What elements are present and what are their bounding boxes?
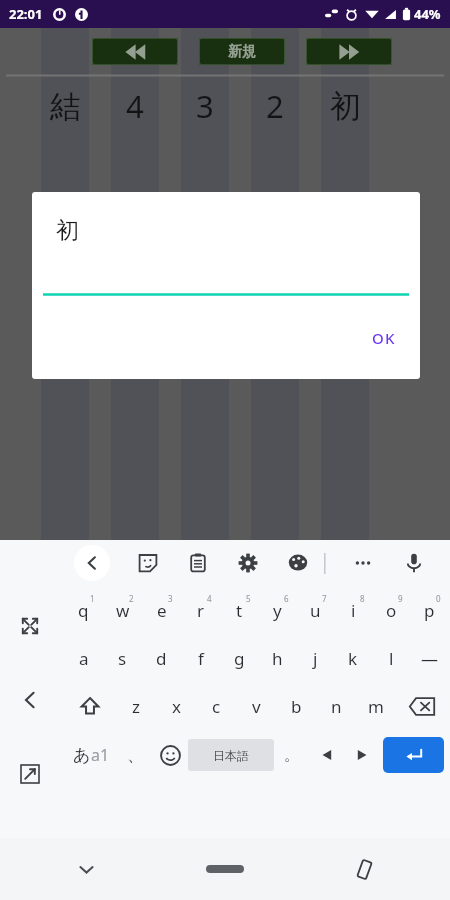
button[interactable]: Back — [12, 682, 48, 718]
button[interactable]: Expand keyboard — [12, 608, 48, 644]
button[interactable]: Enter — [383, 737, 444, 773]
button[interactable]: Themes — [280, 545, 316, 581]
button[interactable]: Emoji — [153, 730, 188, 780]
staticText: a — [79, 647, 89, 670]
staticText: 1 — [90, 593, 95, 604]
staticText: c — [212, 695, 221, 718]
button[interactable]: 初 — [321, 77, 369, 135]
button[interactable]: l — [372, 634, 410, 682]
button[interactable]: d — [142, 634, 181, 682]
staticText: k — [348, 647, 358, 670]
button[interactable]: More options — [345, 545, 381, 581]
staticText: t — [236, 599, 243, 622]
button[interactable]: 2 — [251, 77, 299, 135]
staticText: 5 — [246, 593, 251, 604]
staticText: x — [172, 695, 181, 718]
staticText: 9 — [398, 593, 403, 604]
staticText: d — [156, 647, 167, 670]
staticText: OK — [372, 328, 396, 348]
button[interactable]: s — [103, 634, 142, 682]
staticText: g — [234, 647, 245, 670]
button[interactable]: j — [296, 634, 334, 682]
staticText: 初 — [56, 216, 79, 245]
staticText: p — [424, 599, 435, 622]
staticText: 8 — [360, 593, 365, 604]
button[interactable]: Backspace — [396, 682, 448, 730]
button[interactable]: w — [103, 586, 142, 634]
button[interactable]: f — [181, 634, 220, 682]
button[interactable]: h — [258, 634, 296, 682]
button[interactable]: 結 — [41, 77, 89, 135]
staticText: 3 — [168, 593, 173, 604]
button[interactable]: q — [64, 586, 103, 634]
button[interactable]: 、 — [118, 730, 153, 780]
button[interactable]: g — [220, 634, 258, 682]
button[interactable]: Home — [185, 853, 265, 885]
button[interactable]: c — [196, 682, 236, 730]
button[interactable]: e — [142, 586, 181, 634]
button[interactable]: y — [258, 586, 296, 634]
staticText: 3 — [196, 85, 214, 127]
staticText: 2 — [129, 593, 134, 604]
staticText: 初 — [330, 87, 361, 126]
button[interactable]: 新規 — [199, 38, 285, 65]
button[interactable]: Stickers — [130, 545, 166, 581]
button[interactable]: あ — [64, 730, 118, 780]
staticText: r — [197, 599, 205, 622]
staticText: v — [252, 695, 261, 718]
button[interactable]: n — [316, 682, 356, 730]
button[interactable]: 。 — [274, 730, 309, 780]
button[interactable]: Voice input — [396, 545, 432, 581]
staticText: 44% — [414, 5, 441, 23]
button[interactable]: Shift — [64, 682, 116, 730]
staticText: l — [389, 647, 394, 670]
button[interactable]: i — [334, 586, 372, 634]
button[interactable]: r — [181, 586, 220, 634]
button[interactable]: k — [334, 634, 372, 682]
staticText: y — [273, 599, 282, 622]
staticText: n — [331, 695, 342, 718]
button[interactable]: Fast forward — [306, 38, 392, 65]
staticText: 4 — [126, 85, 144, 127]
button[interactable]: x — [156, 682, 196, 730]
button[interactable]: b — [276, 682, 316, 730]
staticText: h — [272, 647, 283, 670]
button[interactable]: Clipboard — [180, 545, 216, 581]
button[interactable]: 3 — [181, 77, 229, 135]
staticText: 。 — [284, 746, 299, 765]
button[interactable]: a — [64, 634, 103, 682]
button[interactable]: Cursor left — [309, 730, 344, 780]
button[interactable]: z — [116, 682, 156, 730]
button[interactable]: — — [410, 634, 448, 682]
button[interactable]: m — [356, 682, 396, 730]
button[interactable]: v — [236, 682, 276, 730]
staticText: z — [132, 695, 140, 718]
staticText: o — [386, 599, 397, 622]
button[interactable]: Floating keyboard — [12, 756, 48, 792]
staticText: — — [421, 647, 438, 670]
button[interactable]: 日本語 — [188, 739, 274, 771]
button[interactable]: u — [296, 586, 334, 634]
staticText: a1 — [91, 744, 110, 766]
button[interactable]: Settings — [230, 545, 266, 581]
button[interactable]: Rotate screen — [342, 847, 386, 891]
button[interactable]: Hide keyboard — [64, 847, 108, 891]
button[interactable]: t — [220, 586, 258, 634]
button[interactable]: Back — [74, 545, 110, 581]
button[interactable]: OK — [352, 320, 416, 356]
staticText: 結 — [50, 87, 81, 126]
staticText: 7 — [322, 593, 327, 604]
button[interactable]: p — [410, 586, 448, 634]
staticText: m — [368, 695, 384, 718]
staticText: j — [313, 647, 318, 670]
button[interactable]: Cursor right — [344, 730, 379, 780]
button[interactable]: o — [372, 586, 410, 634]
staticText: 日本語 — [213, 748, 249, 763]
staticText: f — [198, 647, 204, 670]
staticText: b — [291, 695, 302, 718]
staticText: w — [116, 599, 130, 622]
button[interactable]: 4 — [111, 77, 159, 135]
staticText: 6 — [284, 593, 289, 604]
button[interactable]: Rewind — [92, 38, 178, 65]
staticText: 、 — [127, 745, 144, 766]
